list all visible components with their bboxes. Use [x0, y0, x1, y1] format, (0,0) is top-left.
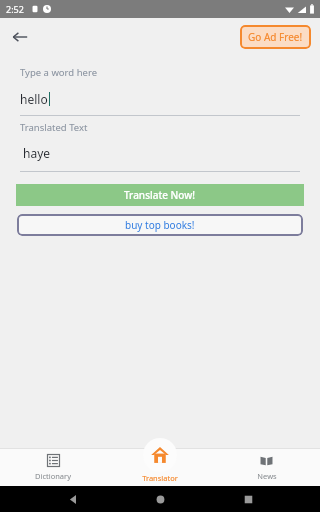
button[interactable]: Recents [233, 486, 263, 512]
staticText: hello [20, 91, 48, 107]
button[interactable]: Back [4, 21, 36, 53]
staticText: Dictionary [35, 471, 71, 481]
button[interactable]: Go Ad Free! [240, 25, 311, 49]
staticText: 2:52 [6, 3, 24, 15]
staticText: Go Ad Free! [248, 30, 303, 44]
staticText: Translated Text [20, 121, 88, 134]
button[interactable]: Dictionary [0, 450, 106, 485]
button[interactable]: News [213, 450, 320, 485]
staticText: News [257, 471, 277, 481]
staticText: Type a word here [20, 66, 97, 79]
staticText: Translator [142, 473, 178, 483]
button[interactable]: Translate Now! [16, 184, 304, 206]
button[interactable]: buy top books! [17, 214, 303, 236]
button[interactable]: Translator [125, 438, 195, 486]
staticText: Translate Now! [124, 188, 196, 202]
staticText: buy top books! [125, 218, 195, 232]
button[interactable]: haye [23, 145, 320, 161]
button[interactable]: hello [20, 91, 320, 107]
button[interactable]: Home [145, 486, 175, 512]
button[interactable]: Back [58, 486, 88, 512]
staticText: haye [23, 145, 51, 161]
